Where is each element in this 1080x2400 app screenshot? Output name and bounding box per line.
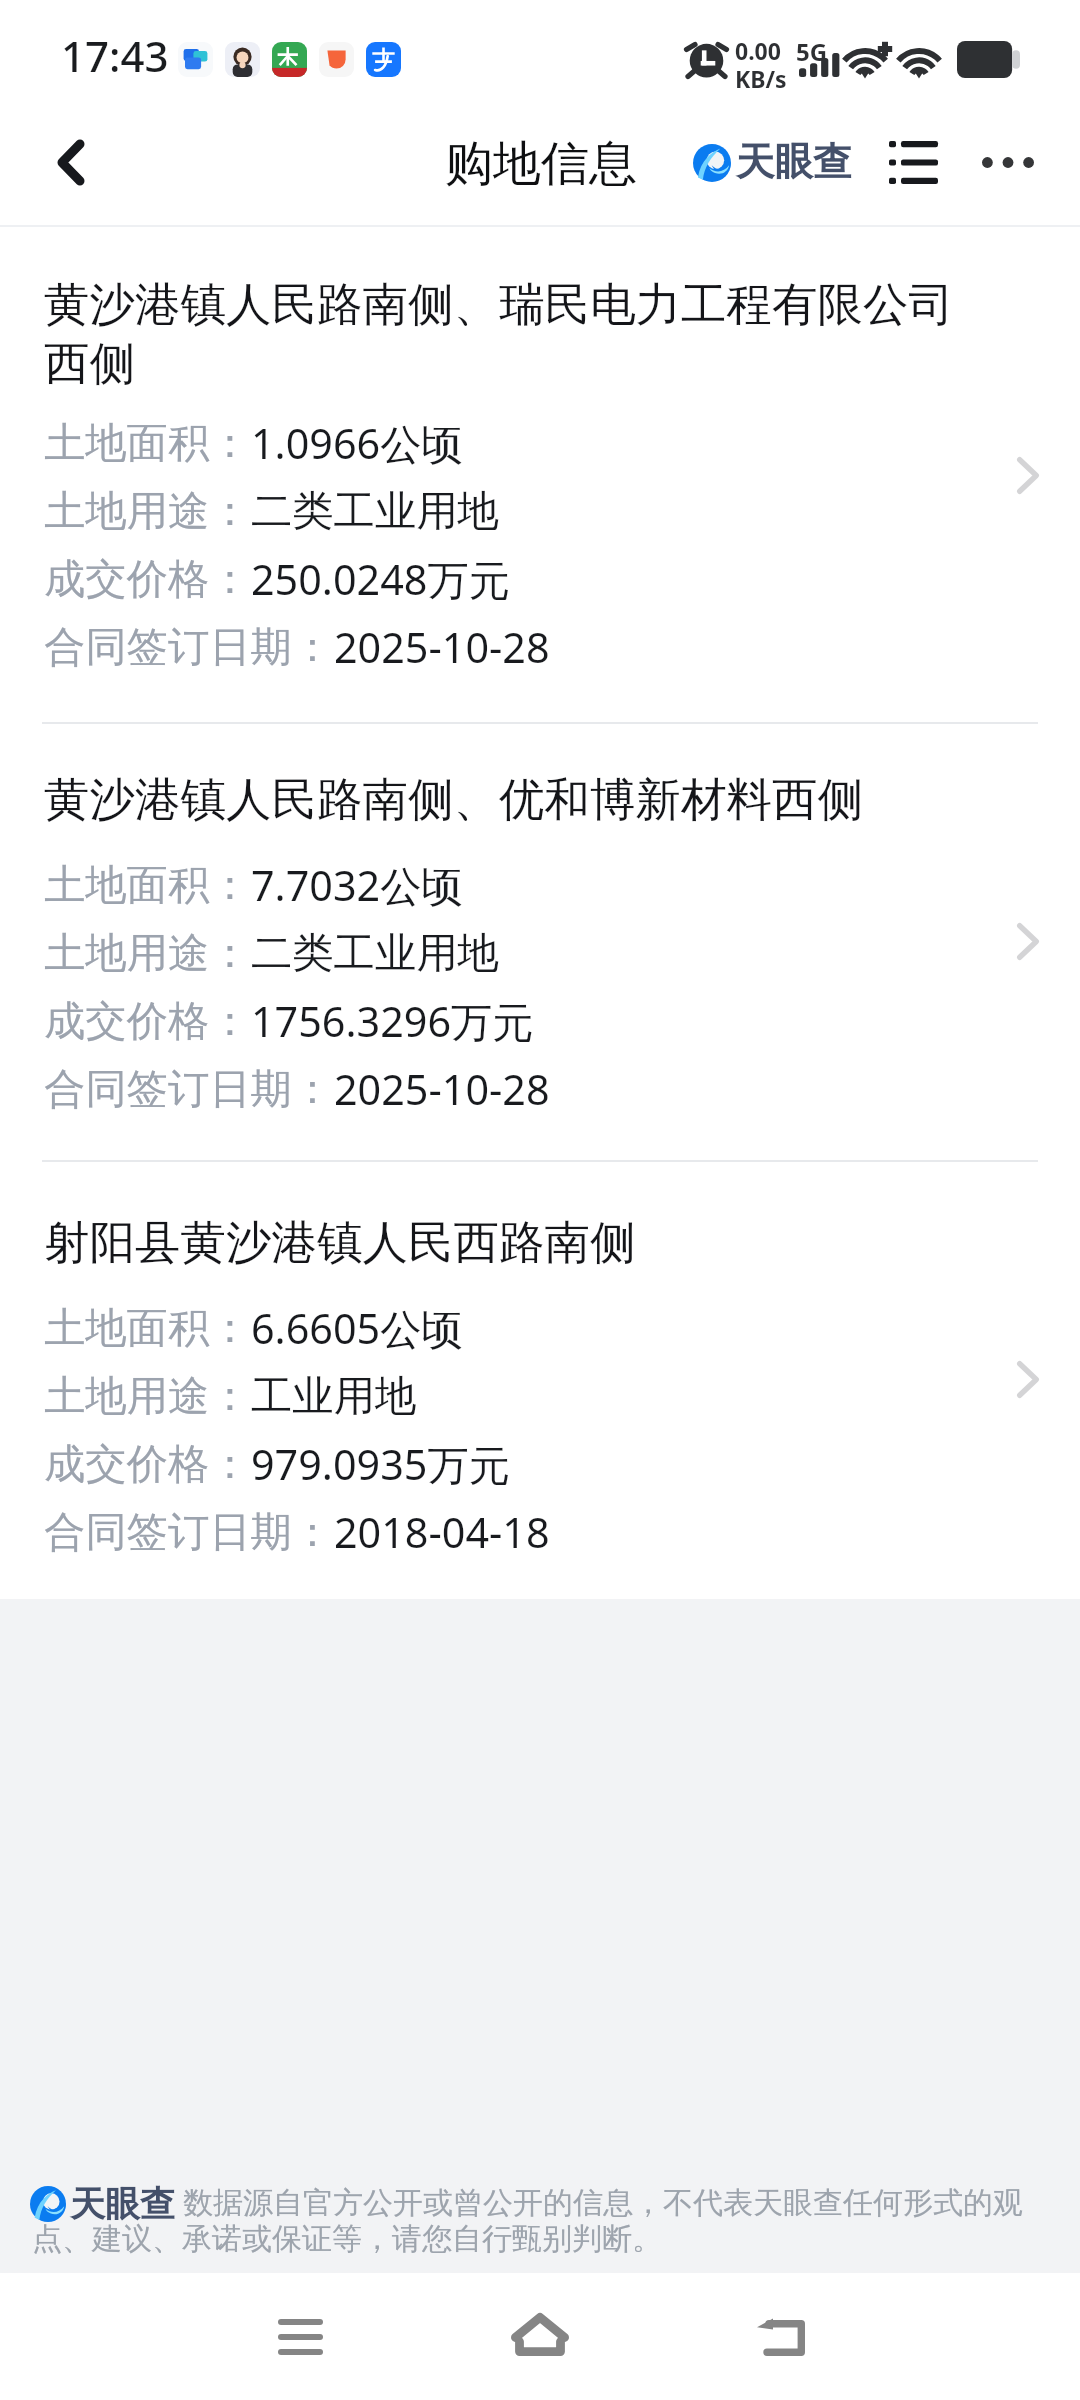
staticText: 合同签订日期： — [44, 621, 334, 673]
button[interactable]: Back — [31, 122, 111, 202]
staticText: 5G — [796, 35, 828, 68]
button[interactable]: 射阳县黄沙港镇人民西路南侧 — [0, 1179, 1080, 1599]
button[interactable]: Recent apps — [245, 2282, 355, 2392]
staticText: 成交价格： — [44, 553, 251, 605]
staticText: 0.00 — [735, 35, 781, 66]
button[interactable]: 黄沙港镇人民路南侧、瑞民电力工程有限公司西侧 — [0, 227, 1080, 705]
staticText: 土地面积： — [44, 859, 251, 911]
staticText: 天眼查 — [70, 2182, 175, 2226]
staticText: 成交价格： — [44, 1438, 251, 1490]
button[interactable]: Home — [485, 2279, 595, 2389]
staticText: 射阳县黄沙港镇人民西路南侧 — [44, 1214, 636, 1271]
button[interactable]: List view — [868, 117, 958, 207]
button[interactable]: Back — [726, 2283, 836, 2393]
staticText: KB/s — [735, 63, 787, 94]
staticText: 土地用途： — [44, 485, 251, 537]
staticText: 工业用地 — [251, 1370, 417, 1422]
staticText: 979.0935万元 — [251, 1436, 511, 1492]
staticText: 天眼查 — [736, 138, 852, 187]
staticText: 购地信息 — [445, 134, 637, 194]
staticText: 土地用途： — [44, 927, 251, 979]
button[interactable]: 黄沙港镇人民路南侧、优和博新材料西侧 — [0, 741, 1080, 1143]
staticText: 土地用途： — [44, 1370, 251, 1422]
staticText: 土地面积： — [44, 417, 251, 469]
button[interactable]: More options — [963, 117, 1053, 207]
staticText: 土地面积： — [44, 1302, 251, 1354]
staticText: 6.6605公顷 — [251, 1300, 463, 1356]
staticText: 2025-10-28 — [334, 1061, 550, 1117]
staticText: 成交价格： — [44, 995, 251, 1047]
staticText: 二类工业用地 — [251, 927, 499, 979]
staticText: 1.0966公顷 — [251, 415, 463, 471]
staticText: 黄沙港镇人民路南侧、优和博新材料西侧 — [44, 771, 863, 828]
staticText: 17:43 — [61, 27, 169, 84]
staticText: 250.0248万元 — [251, 551, 511, 607]
staticText: 二类工业用地 — [251, 485, 499, 537]
staticText: 合同签订日期： — [44, 1063, 334, 1115]
staticText: 数据源自官方公开或曾公开的信息，不代表天眼查任何形式的观 — [183, 2184, 1023, 2222]
staticText: 2025-10-28 — [334, 619, 550, 675]
staticText: 点、建议、承诺或保证等，请您自行甄别判断。 — [32, 2220, 662, 2258]
staticText: 合同签订日期： — [44, 1506, 334, 1558]
staticText: 7.7032公顷 — [251, 857, 463, 913]
staticText: 黄沙港镇人民路南侧、瑞民电力工程有限公司西侧 — [44, 276, 960, 393]
staticText: 2018-04-18 — [334, 1504, 550, 1560]
staticText: 1756.3296万元 — [251, 993, 534, 1049]
